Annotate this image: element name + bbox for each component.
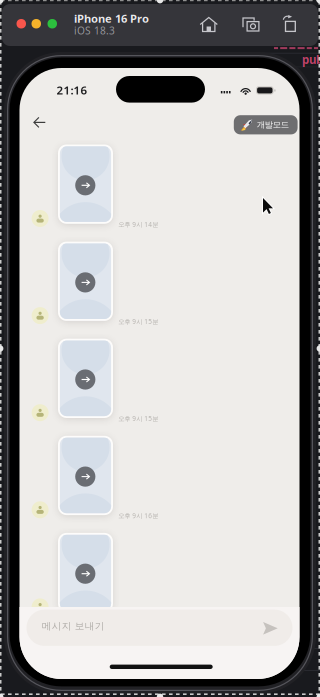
staticText: 오후 9시 15분 (118, 414, 158, 423)
button[interactable]: 개발모드 (234, 115, 298, 134)
button[interactable]: Rotate (278, 15, 297, 32)
button[interactable]: Back (33, 116, 46, 129)
staticText: pub (302, 52, 320, 67)
staticText: 메시지 보내기 (42, 620, 105, 632)
staticText: iPhone 16 Pro (74, 11, 149, 26)
staticText: 21:16 (56, 82, 87, 98)
staticText: iOS 18.3 (74, 24, 115, 37)
staticText: 오후 9시 16분 (118, 511, 158, 520)
staticText: 개발모드 (257, 119, 289, 130)
staticText: 오후 9시 14분 (118, 220, 158, 229)
button[interactable]: Screenshot (241, 16, 261, 33)
button[interactable]: Home (199, 16, 218, 33)
staticText: 오후 9시 15분 (118, 317, 158, 326)
